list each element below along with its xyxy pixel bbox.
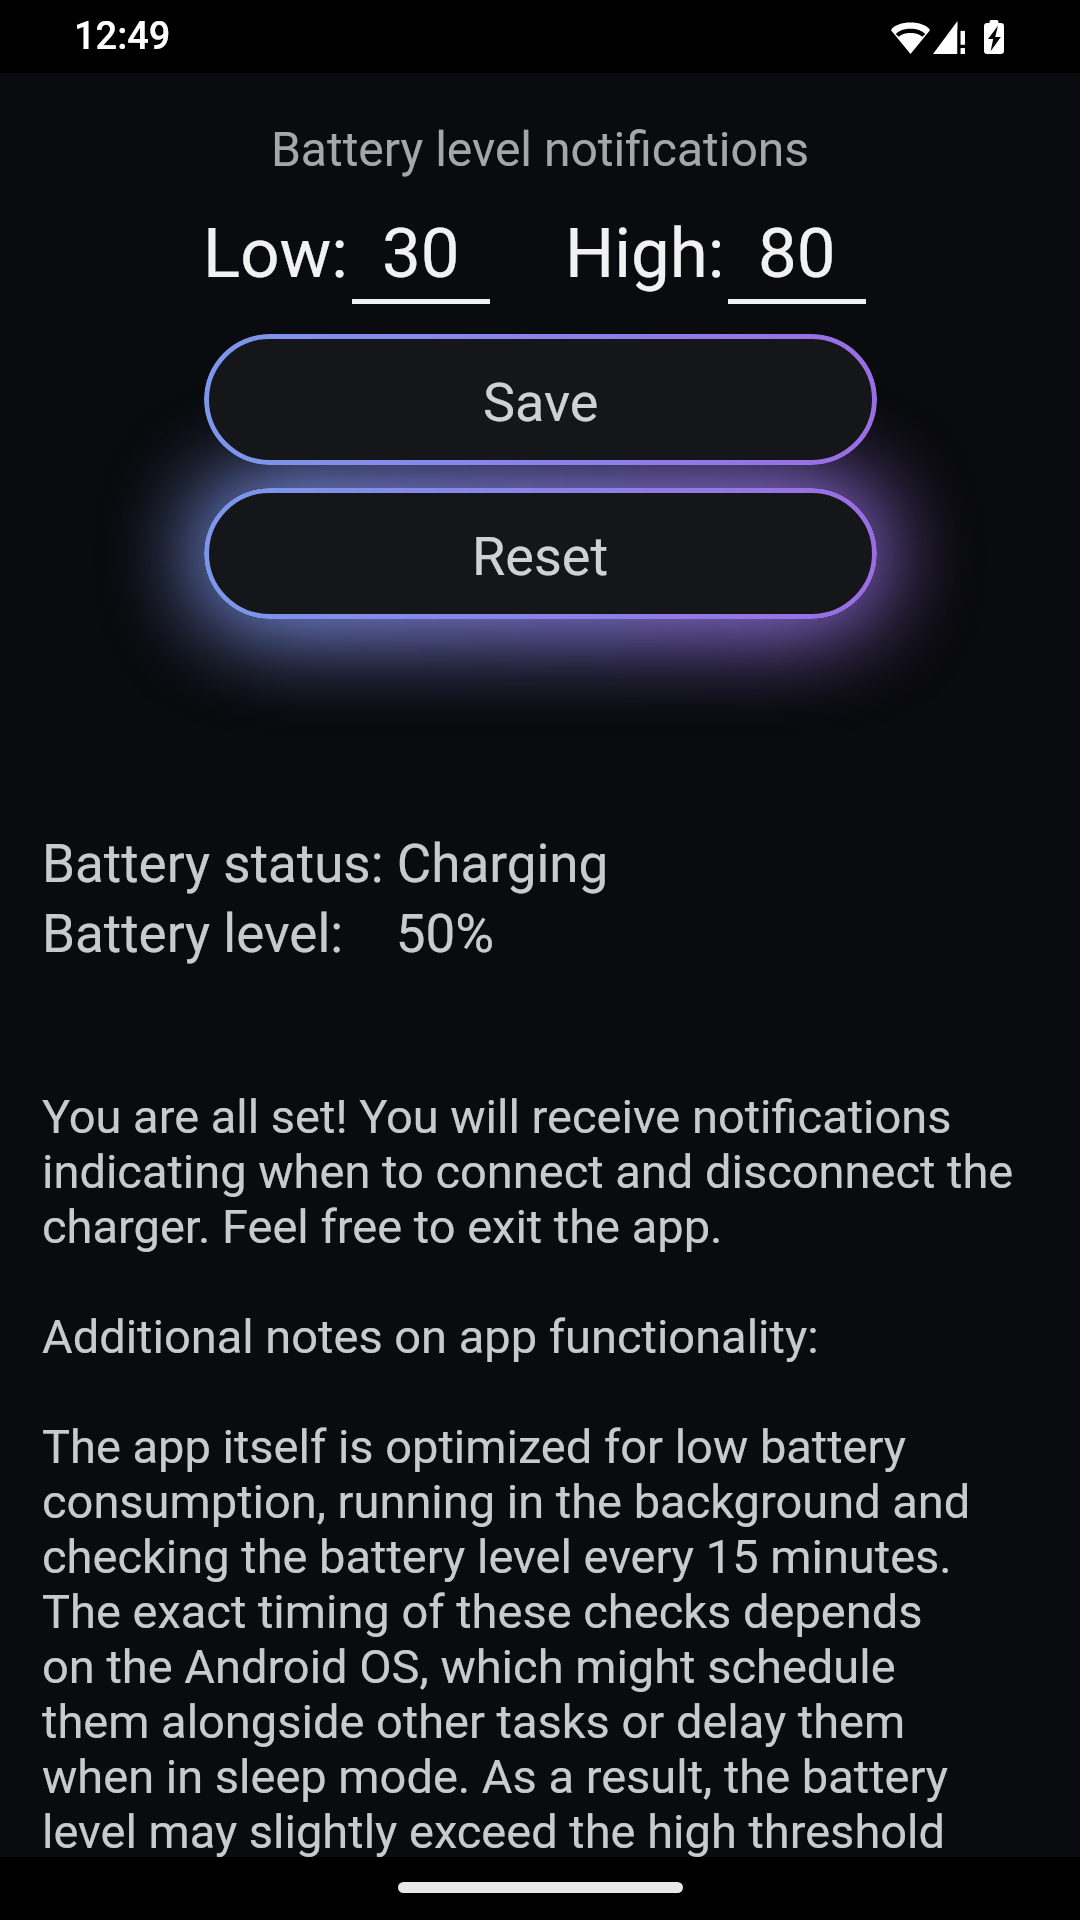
staticText: Save bbox=[483, 371, 599, 434]
staticText: You are all set! You will receive notifi… bbox=[42, 1089, 1014, 1859]
staticText: Low: bbox=[203, 213, 349, 294]
staticText: Battery level notifications bbox=[0, 121, 1080, 177]
staticText: Reset bbox=[472, 525, 609, 588]
staticText: 30 bbox=[382, 213, 460, 294]
button[interactable]: Reset bbox=[204, 488, 877, 619]
staticText: 12:49 bbox=[74, 14, 171, 59]
button[interactable]: Save bbox=[204, 334, 877, 465]
staticText: High: bbox=[565, 213, 725, 294]
staticText: 80 bbox=[758, 213, 836, 294]
staticText: Battery status: Charging Battery level: … bbox=[42, 833, 609, 965]
